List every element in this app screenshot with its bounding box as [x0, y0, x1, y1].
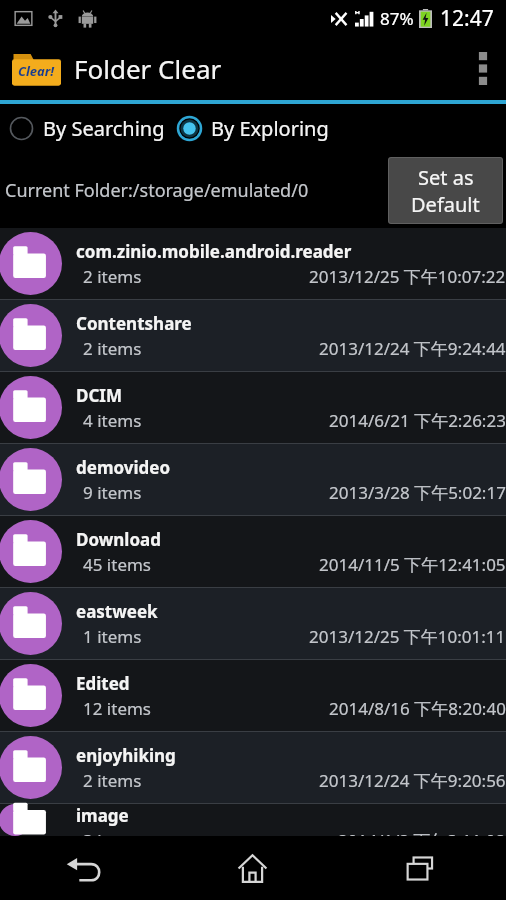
button[interactable]: More options — [460, 36, 506, 100]
button[interactable]: eastweek — [0, 588, 506, 659]
staticText: 12 items — [83, 697, 152, 720]
staticText: 3 items — [83, 829, 142, 836]
staticText: com.zinio.mobile.android.reader — [76, 240, 352, 263]
staticText: 2013/12/25 下午10:07:22 — [309, 265, 506, 288]
staticText: 2 items — [83, 265, 142, 288]
staticText: By Searching — [43, 115, 165, 142]
staticText: Clear! — [18, 62, 55, 80]
button[interactable]: DCIM — [0, 372, 506, 443]
button[interactable]: By Searching — [9, 110, 165, 147]
staticText: 2014/1/2 下午3:11:08 — [338, 829, 506, 836]
staticText: Folder Clear — [74, 51, 222, 86]
button[interactable]: Recent apps — [337, 836, 506, 900]
staticText: 87% — [380, 7, 414, 30]
button[interactable]: Edited — [0, 660, 506, 731]
button[interactable]: Set as — [388, 157, 503, 224]
button[interactable]: By Exploring — [177, 110, 329, 147]
staticText: 4 items — [83, 409, 142, 432]
staticText: eastweek — [76, 600, 158, 623]
staticText: Download — [76, 528, 161, 551]
staticText: 9 items — [83, 481, 142, 504]
staticText: 2014/6/21 下午2:26:23 — [329, 409, 506, 432]
staticText: 2014/11/5 下午12:41:05 — [319, 553, 506, 576]
staticText: Default — [411, 191, 480, 218]
staticText: Contentshare — [76, 312, 192, 335]
staticText: 2013/12/24 下午9:20:56 — [319, 769, 506, 792]
staticText: Current Folder:/storage/emulated/0 — [5, 178, 309, 203]
button[interactable]: Download — [0, 516, 506, 587]
button[interactable]: demovideo — [0, 444, 506, 515]
staticText: DCIM — [76, 384, 123, 407]
staticText: 2013/12/24 下午9:24:44 — [319, 337, 506, 360]
staticText: 2 items — [83, 769, 142, 792]
staticText: 2 items — [83, 337, 142, 360]
staticText: 2013/12/25 下午10:01:11 — [309, 625, 506, 648]
staticText: 2013/3/28 下午5:02:17 — [329, 481, 506, 504]
staticText: demovideo — [76, 456, 171, 479]
staticText: Set as — [418, 164, 474, 191]
staticText: 12:47 — [440, 4, 494, 33]
button[interactable]: image — [0, 804, 506, 836]
staticText: enjoyhiking — [76, 744, 176, 767]
staticText: image — [76, 804, 129, 827]
staticText: 2014/8/16 下午8:20:40 — [329, 697, 506, 720]
button[interactable]: Contentshare — [0, 300, 506, 371]
button[interactable]: Home — [168, 836, 337, 900]
staticText: 1 items — [83, 625, 142, 648]
staticText: By Exploring — [211, 115, 329, 142]
staticText: Edited — [76, 672, 130, 695]
button[interactable]: enjoyhiking — [0, 732, 506, 803]
button[interactable]: Back — [0, 836, 168, 900]
staticText: 45 items — [83, 553, 152, 576]
button[interactable]: com.zinio.mobile.android.reader — [0, 228, 506, 299]
